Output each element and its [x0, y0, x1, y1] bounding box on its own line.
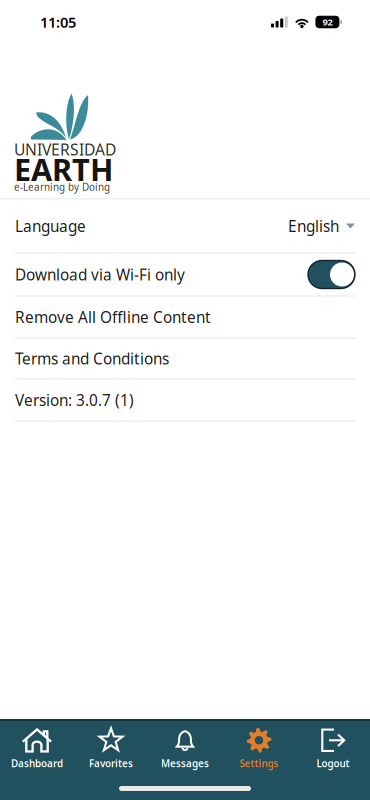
- button[interactable]: Settings: [222, 721, 296, 777]
- staticText: Logout: [316, 757, 349, 770]
- button[interactable]: Version: 3.0.7 (1): [0, 379, 370, 420]
- staticText: Download via Wi-Fi only: [15, 264, 185, 285]
- button[interactable]: Messages: [148, 721, 222, 777]
- staticText: English: [288, 216, 339, 236]
- staticText: UNIVERSIDAD: [14, 139, 116, 160]
- staticText: Remove All Offline Content: [15, 307, 211, 327]
- button[interactable]: Logout: [296, 721, 370, 777]
- button[interactable]: Dashboard: [0, 721, 74, 777]
- staticText: Favorites: [89, 757, 133, 770]
- staticText: Messages: [161, 757, 209, 770]
- button[interactable]: Favorites: [74, 721, 148, 777]
- staticText: 92: [322, 16, 332, 28]
- button[interactable]: Terms and Conditions: [0, 338, 370, 378]
- staticText: Terms and Conditions: [15, 348, 169, 369]
- staticText: Settings: [239, 757, 278, 770]
- button[interactable]: Language: [0, 199, 370, 252]
- staticText: Dashboard: [11, 757, 63, 770]
- button[interactable]: Remove All Offline Content: [0, 296, 370, 337]
- staticText: Version: 3.0.7 (1): [15, 390, 134, 410]
- staticText: Language: [15, 216, 86, 236]
- staticText: EARTH: [14, 148, 113, 190]
- staticText: 11:05: [40, 12, 76, 32]
- staticText: e-Learning by Doing: [14, 180, 110, 194]
- button[interactable]: Download via Wi-Fi only: [0, 253, 370, 295]
